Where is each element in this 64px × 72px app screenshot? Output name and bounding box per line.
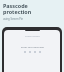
staticText: Screen pinned: [25, 35, 40, 38]
staticText: Passcode protection: [3, 2, 32, 15]
staticText: using Screen Pin: [3, 17, 24, 21]
staticText: Enter your passcode: [21, 45, 44, 48]
